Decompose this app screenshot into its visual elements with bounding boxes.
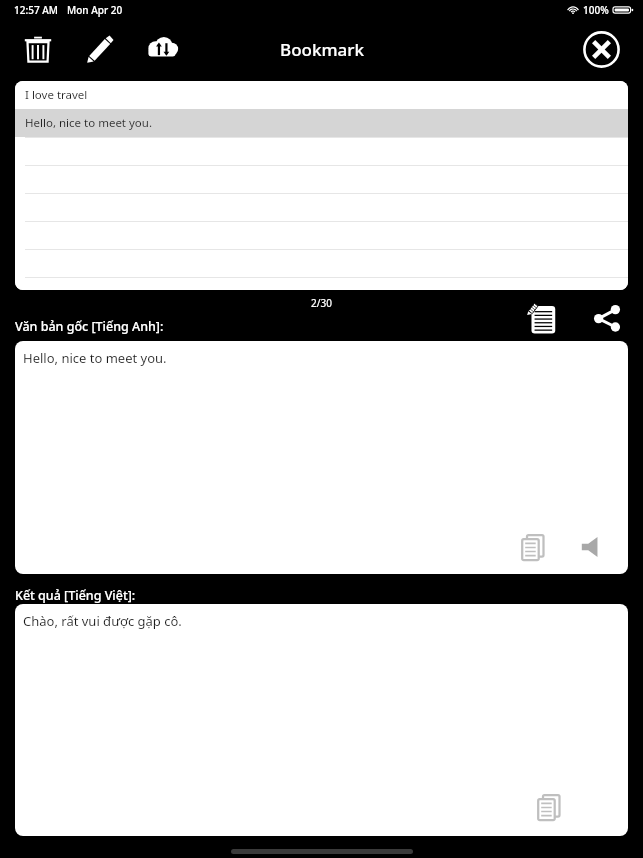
button[interactable]: Sync xyxy=(139,26,185,72)
staticText: Văn bản gốc [Tiếng Anh]: xyxy=(15,318,164,335)
staticText: Hello, nice to meet you. xyxy=(25,115,153,131)
staticText: 12:57 AM xyxy=(14,3,58,17)
button[interactable] xyxy=(15,249,628,277)
button[interactable]: Edit xyxy=(77,26,123,72)
staticText: Bookmark xyxy=(280,38,364,61)
button[interactable]: Copy result xyxy=(528,786,570,828)
button[interactable] xyxy=(15,193,628,221)
button[interactable]: Speak xyxy=(572,526,614,568)
button[interactable]: Delete xyxy=(15,26,61,72)
staticText: Mon Apr 20 xyxy=(67,3,123,17)
button[interactable]: Share xyxy=(585,296,629,340)
staticText: I love travel xyxy=(25,87,88,103)
button[interactable] xyxy=(15,221,628,249)
button[interactable]: Hello, nice to meet you. xyxy=(15,109,628,137)
button[interactable]: I love travel xyxy=(15,81,628,109)
button[interactable] xyxy=(15,137,628,165)
staticText: Kết quả [Tiếng Việt]: xyxy=(15,587,136,604)
button[interactable] xyxy=(15,165,628,193)
button[interactable]: Edit note xyxy=(521,296,565,340)
staticText: 2/30 xyxy=(311,296,332,310)
staticText: Chào, rất vui được gặp cô. xyxy=(23,612,182,630)
staticText: 100% xyxy=(583,3,609,17)
staticText: Hello, nice to meet you. xyxy=(23,349,167,367)
button[interactable]: Close xyxy=(579,27,623,71)
button[interactable] xyxy=(15,277,628,290)
button[interactable]: Copy xyxy=(512,526,554,568)
